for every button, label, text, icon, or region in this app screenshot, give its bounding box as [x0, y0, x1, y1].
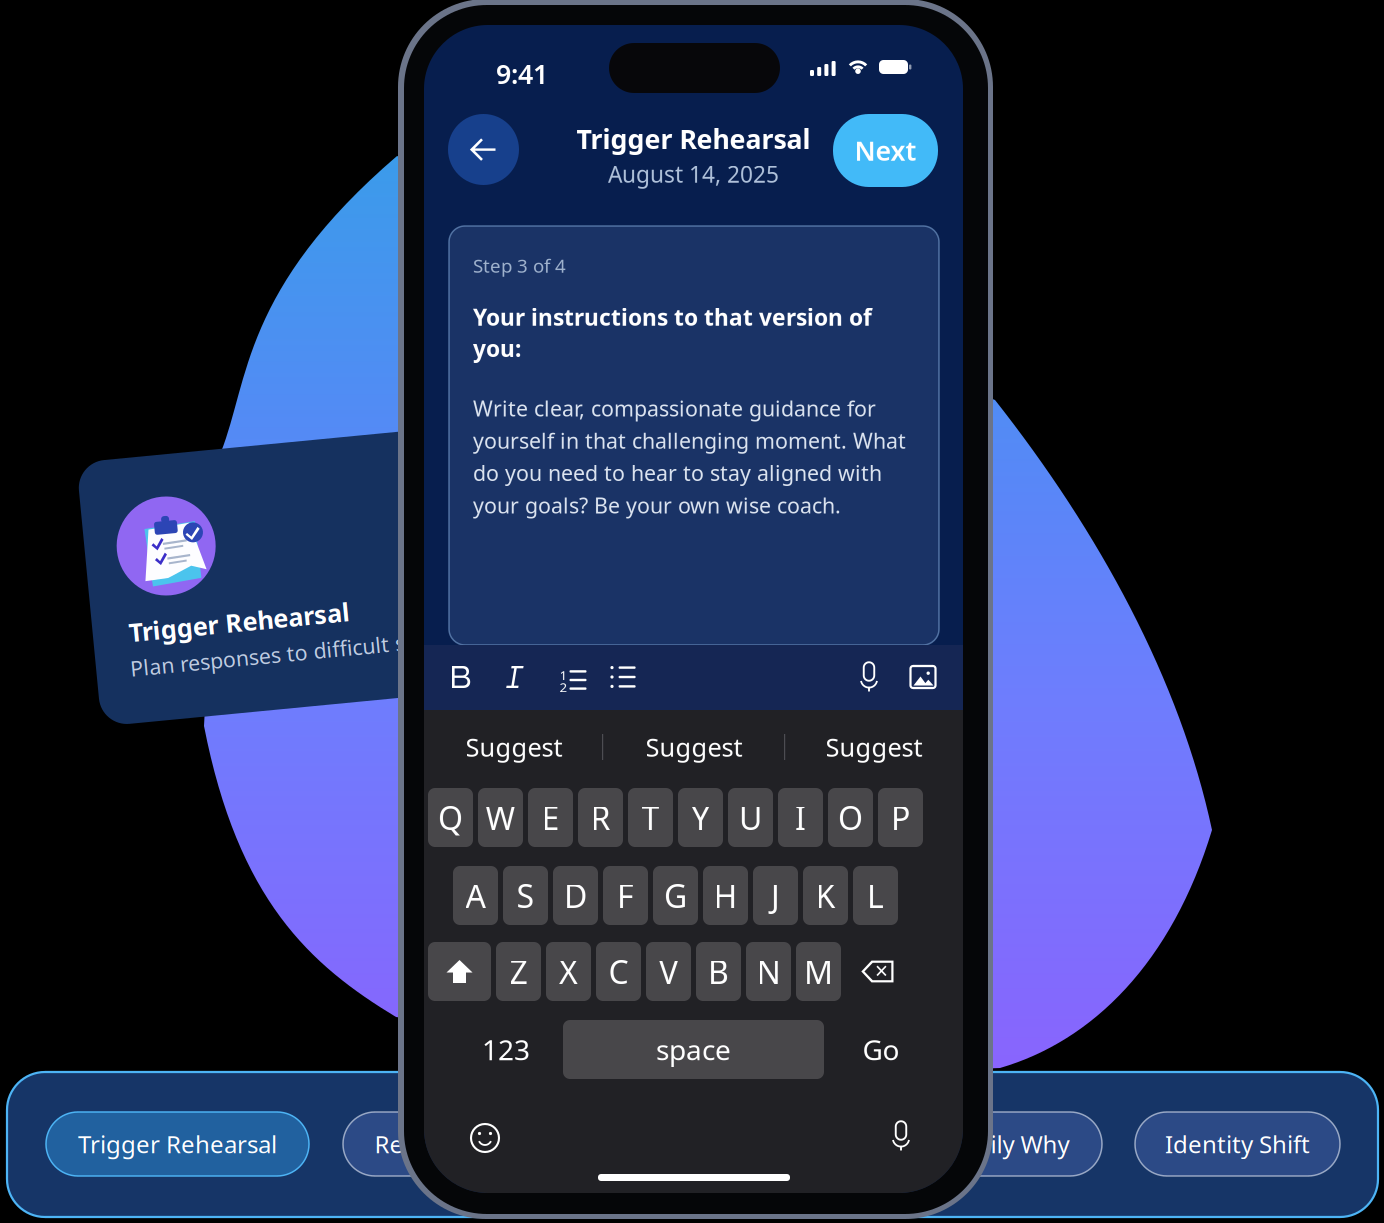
staticText: Daily Why: [959, 1128, 1069, 1160]
button[interactable]: Back: [448, 114, 519, 185]
button[interactable]: P: [878, 788, 923, 847]
staticText: Reframe: [374, 1128, 469, 1160]
staticText: P: [891, 796, 910, 839]
button[interactable]: M: [796, 942, 841, 1001]
staticText: H: [713, 874, 737, 917]
staticText: J: [771, 874, 780, 917]
staticText: space: [656, 1031, 731, 1068]
staticText: K: [815, 874, 835, 917]
button[interactable]: B: [696, 942, 741, 1001]
staticText: V: [659, 950, 678, 993]
staticText: X: [559, 950, 578, 993]
button[interactable]: O: [828, 788, 873, 847]
staticText: Trigger Rehearsal: [124, 599, 346, 633]
button[interactable]: V: [646, 942, 691, 1001]
staticText: Z: [509, 950, 527, 993]
staticText: Your instructions to that version of you…: [473, 302, 872, 363]
button[interactable]: C: [596, 942, 641, 1001]
button[interactable]: W: [478, 788, 523, 847]
staticText: Plan responses to difficult situations: [122, 638, 487, 666]
button[interactable]: F: [603, 866, 648, 925]
staticText: D: [564, 874, 587, 917]
staticText: N: [756, 950, 780, 993]
staticText: 9:41: [496, 56, 548, 91]
button[interactable]: Suggest: [785, 712, 963, 782]
button[interactable]: Daily Why: [927, 1112, 1102, 1176]
button[interactable]: Dictation: [879, 1113, 923, 1157]
button[interactable]: S: [503, 866, 548, 925]
button[interactable]: I: [778, 788, 823, 847]
staticText: O: [838, 796, 863, 839]
button[interactable]: Go: [829, 1020, 933, 1079]
staticText: ×: [875, 955, 888, 985]
button[interactable]: Reframe: [343, 1112, 501, 1176]
staticText: U: [739, 796, 762, 839]
button[interactable]: U: [728, 788, 773, 847]
staticText: Y: [691, 796, 709, 839]
staticText: M: [804, 950, 833, 993]
button[interactable]: Shift: [428, 942, 491, 1001]
button[interactable]: Suggest: [425, 712, 603, 782]
staticText: T: [641, 796, 659, 839]
button[interactable]: A: [453, 866, 498, 925]
button[interactable]: Suggest: [604, 712, 784, 782]
button[interactable]: Bulleted list: [601, 653, 645, 701]
staticText: 1: [559, 666, 567, 684]
button[interactable]: Bold: [439, 653, 483, 701]
staticText: Step 3 of 4: [473, 253, 566, 278]
staticText: Trigger Rehearsal: [78, 1128, 277, 1160]
staticText: Q: [438, 796, 463, 839]
button[interactable]: N: [746, 942, 791, 1001]
button[interactable]: T: [628, 788, 673, 847]
staticText: R: [590, 796, 610, 839]
button[interactable]: space: [563, 1020, 824, 1079]
staticText: Suggest: [825, 730, 922, 764]
staticText: Write clear, compassionate guidance for …: [473, 394, 906, 519]
staticText: Go: [862, 1031, 899, 1068]
staticText: 2: [559, 678, 567, 696]
staticText: Identity Shift: [1165, 1128, 1310, 1160]
staticText: G: [664, 874, 687, 917]
button[interactable]: Z: [496, 942, 541, 1001]
button[interactable]: Dictate: [847, 652, 891, 700]
staticText: F: [617, 874, 634, 917]
staticText: E: [541, 796, 559, 839]
button[interactable]: R: [578, 788, 623, 847]
button[interactable]: K: [803, 866, 848, 925]
staticText: S: [516, 874, 534, 917]
button[interactable]: Numbered list: [546, 653, 590, 701]
button[interactable]: Trigger Rehearsal: [46, 1112, 309, 1176]
staticText: Next: [854, 133, 916, 168]
button[interactable]: Next: [833, 114, 938, 187]
staticText: 123: [482, 1031, 530, 1068]
staticText: C: [608, 950, 628, 993]
staticText: B: [708, 950, 729, 993]
button[interactable]: Italic: [493, 653, 537, 701]
staticText: Suggest: [645, 730, 742, 764]
staticText: L: [867, 874, 884, 917]
button[interactable]: 123: [454, 1020, 558, 1079]
button[interactable]: X: [546, 942, 591, 1001]
staticText: A: [465, 874, 485, 917]
button[interactable]: D: [553, 866, 598, 925]
staticText: August 14, 2025: [608, 159, 779, 189]
button[interactable]: G: [653, 866, 698, 925]
button[interactable]: E: [528, 788, 573, 847]
button[interactable]: Emoji: [463, 1116, 507, 1160]
staticText: I: [795, 796, 806, 839]
button[interactable]: L: [853, 866, 898, 925]
button[interactable]: J: [753, 866, 798, 925]
button[interactable]: Q: [428, 788, 473, 847]
staticText: Suggest: [465, 730, 562, 764]
button[interactable]: Insert image: [901, 653, 945, 701]
button[interactable]: Identity Shift: [1135, 1112, 1340, 1176]
staticText: Trigger Rehearsal: [576, 121, 810, 156]
button[interactable]: Delete: [846, 942, 909, 1001]
button[interactable]: H: [703, 866, 748, 925]
staticText: W: [485, 796, 515, 839]
button[interactable]: Y: [678, 788, 723, 847]
